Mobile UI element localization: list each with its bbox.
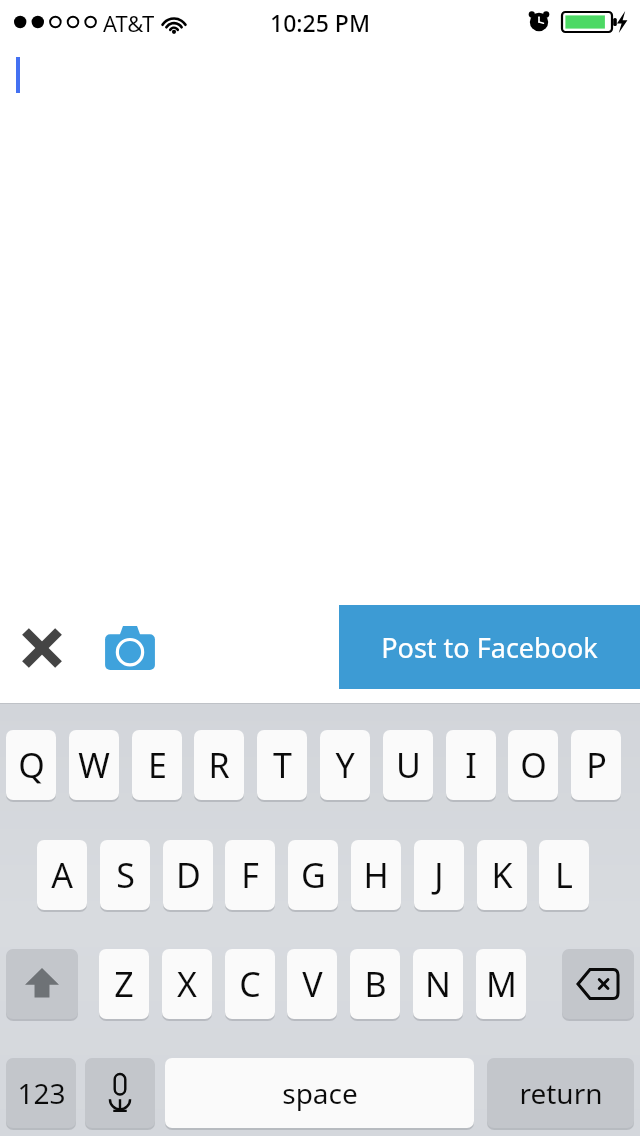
staticText: Q [18,742,45,788]
staticText: V [302,961,323,1007]
staticText: 10:25 PM [270,7,371,38]
staticText: D [176,852,201,898]
button[interactable]: Q [6,730,56,803]
button[interactable]: Backspace [562,949,634,1022]
staticText: J [434,852,444,898]
staticText: P [586,742,607,788]
staticText: H [363,852,389,898]
staticText: W [78,742,110,788]
button[interactable]: B [350,949,400,1022]
button[interactable]: H [351,840,401,913]
button[interactable]: 123 [6,1058,76,1131]
button[interactable]: C [225,949,275,1022]
button[interactable]: U [383,730,433,803]
button[interactable]: Y [320,730,370,803]
staticText: I [465,742,477,788]
staticText: K [491,852,513,898]
button[interactable]: Camera [100,618,160,678]
staticText: N [425,961,451,1007]
button[interactable]: P [571,730,621,803]
button[interactable]: Z [99,949,149,1022]
button[interactable]: Shift [6,949,78,1022]
staticText: Y [335,742,355,788]
button[interactable]: T [257,730,307,803]
button[interactable]: A [37,840,87,913]
button[interactable]: space [165,1058,474,1131]
button[interactable]: K [477,840,527,913]
staticText: C [239,961,261,1007]
staticText: G [301,852,326,898]
button[interactable]: Close [12,618,72,678]
staticText: R [208,742,230,788]
button[interactable]: S [100,840,150,913]
staticText: U [396,742,421,788]
staticText: B [364,961,387,1007]
button[interactable]: R [194,730,244,803]
button[interactable]: L [539,840,589,913]
staticText: return [519,1074,603,1112]
staticText: Post to Facebook [381,629,598,666]
button[interactable]: N [413,949,463,1022]
staticText: M [486,961,517,1007]
button[interactable]: V [287,949,337,1022]
button[interactable]: W [69,730,119,803]
button[interactable]: Dictate [85,1058,155,1131]
staticText: Z [114,961,134,1007]
button[interactable]: J [414,840,464,913]
button[interactable]: D [163,840,213,913]
staticText: F [241,852,259,898]
staticText: A [51,852,73,898]
staticText: 123 [17,1074,66,1112]
button[interactable]: X [162,949,212,1022]
staticText: T [273,742,292,788]
staticText: AT&T [103,8,155,38]
button[interactable]: E [132,730,182,803]
button[interactable]: return [487,1058,634,1131]
button[interactable]: G [288,840,338,913]
button[interactable]: M [476,949,526,1022]
staticText: L [555,852,573,898]
staticText: O [520,742,547,788]
staticText: space [282,1074,358,1112]
button[interactable]: I [446,730,496,803]
button[interactable]: Post to Facebook [339,605,640,689]
button[interactable]: F [225,840,275,913]
staticText: X [177,961,197,1007]
staticText: S [116,852,135,898]
button[interactable]: O [508,730,558,803]
staticText: E [148,742,167,788]
